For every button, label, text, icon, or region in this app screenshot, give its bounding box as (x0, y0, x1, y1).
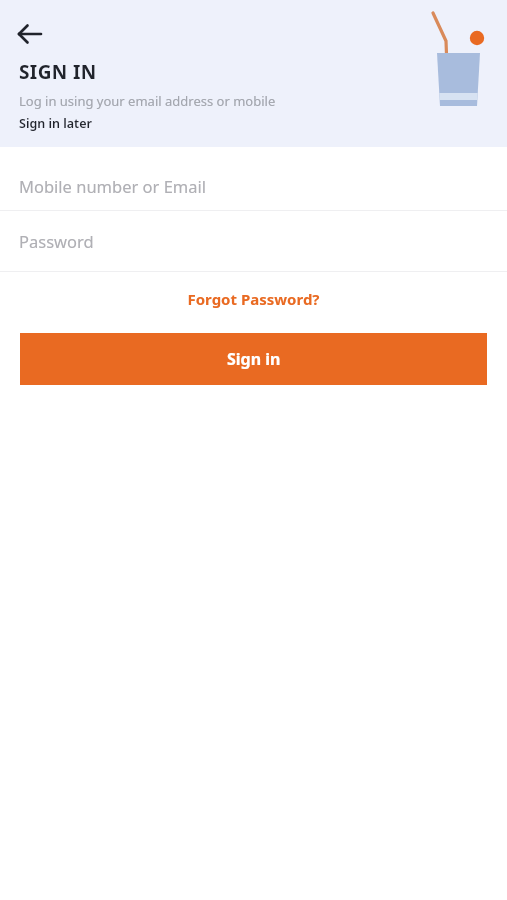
staticText: Sign in later (19, 115, 92, 132)
staticText: Sign in (227, 348, 281, 370)
button[interactable]: Back (12, 15, 48, 51)
button[interactable]: Password (0, 211, 507, 271)
staticText: Forgot Password? (187, 289, 320, 309)
staticText: Mobile number or Email (19, 175, 207, 197)
button[interactable]: Forgot Password? (179, 283, 328, 315)
staticText: Password (19, 230, 94, 252)
button[interactable]: Sign in later (19, 115, 92, 132)
button[interactable]: Mobile number or Email (0, 162, 507, 210)
button[interactable]: Sign in (20, 333, 487, 385)
staticText: SIGN IN (19, 59, 97, 85)
staticText: Log in using your email address or mobil… (19, 92, 276, 110)
